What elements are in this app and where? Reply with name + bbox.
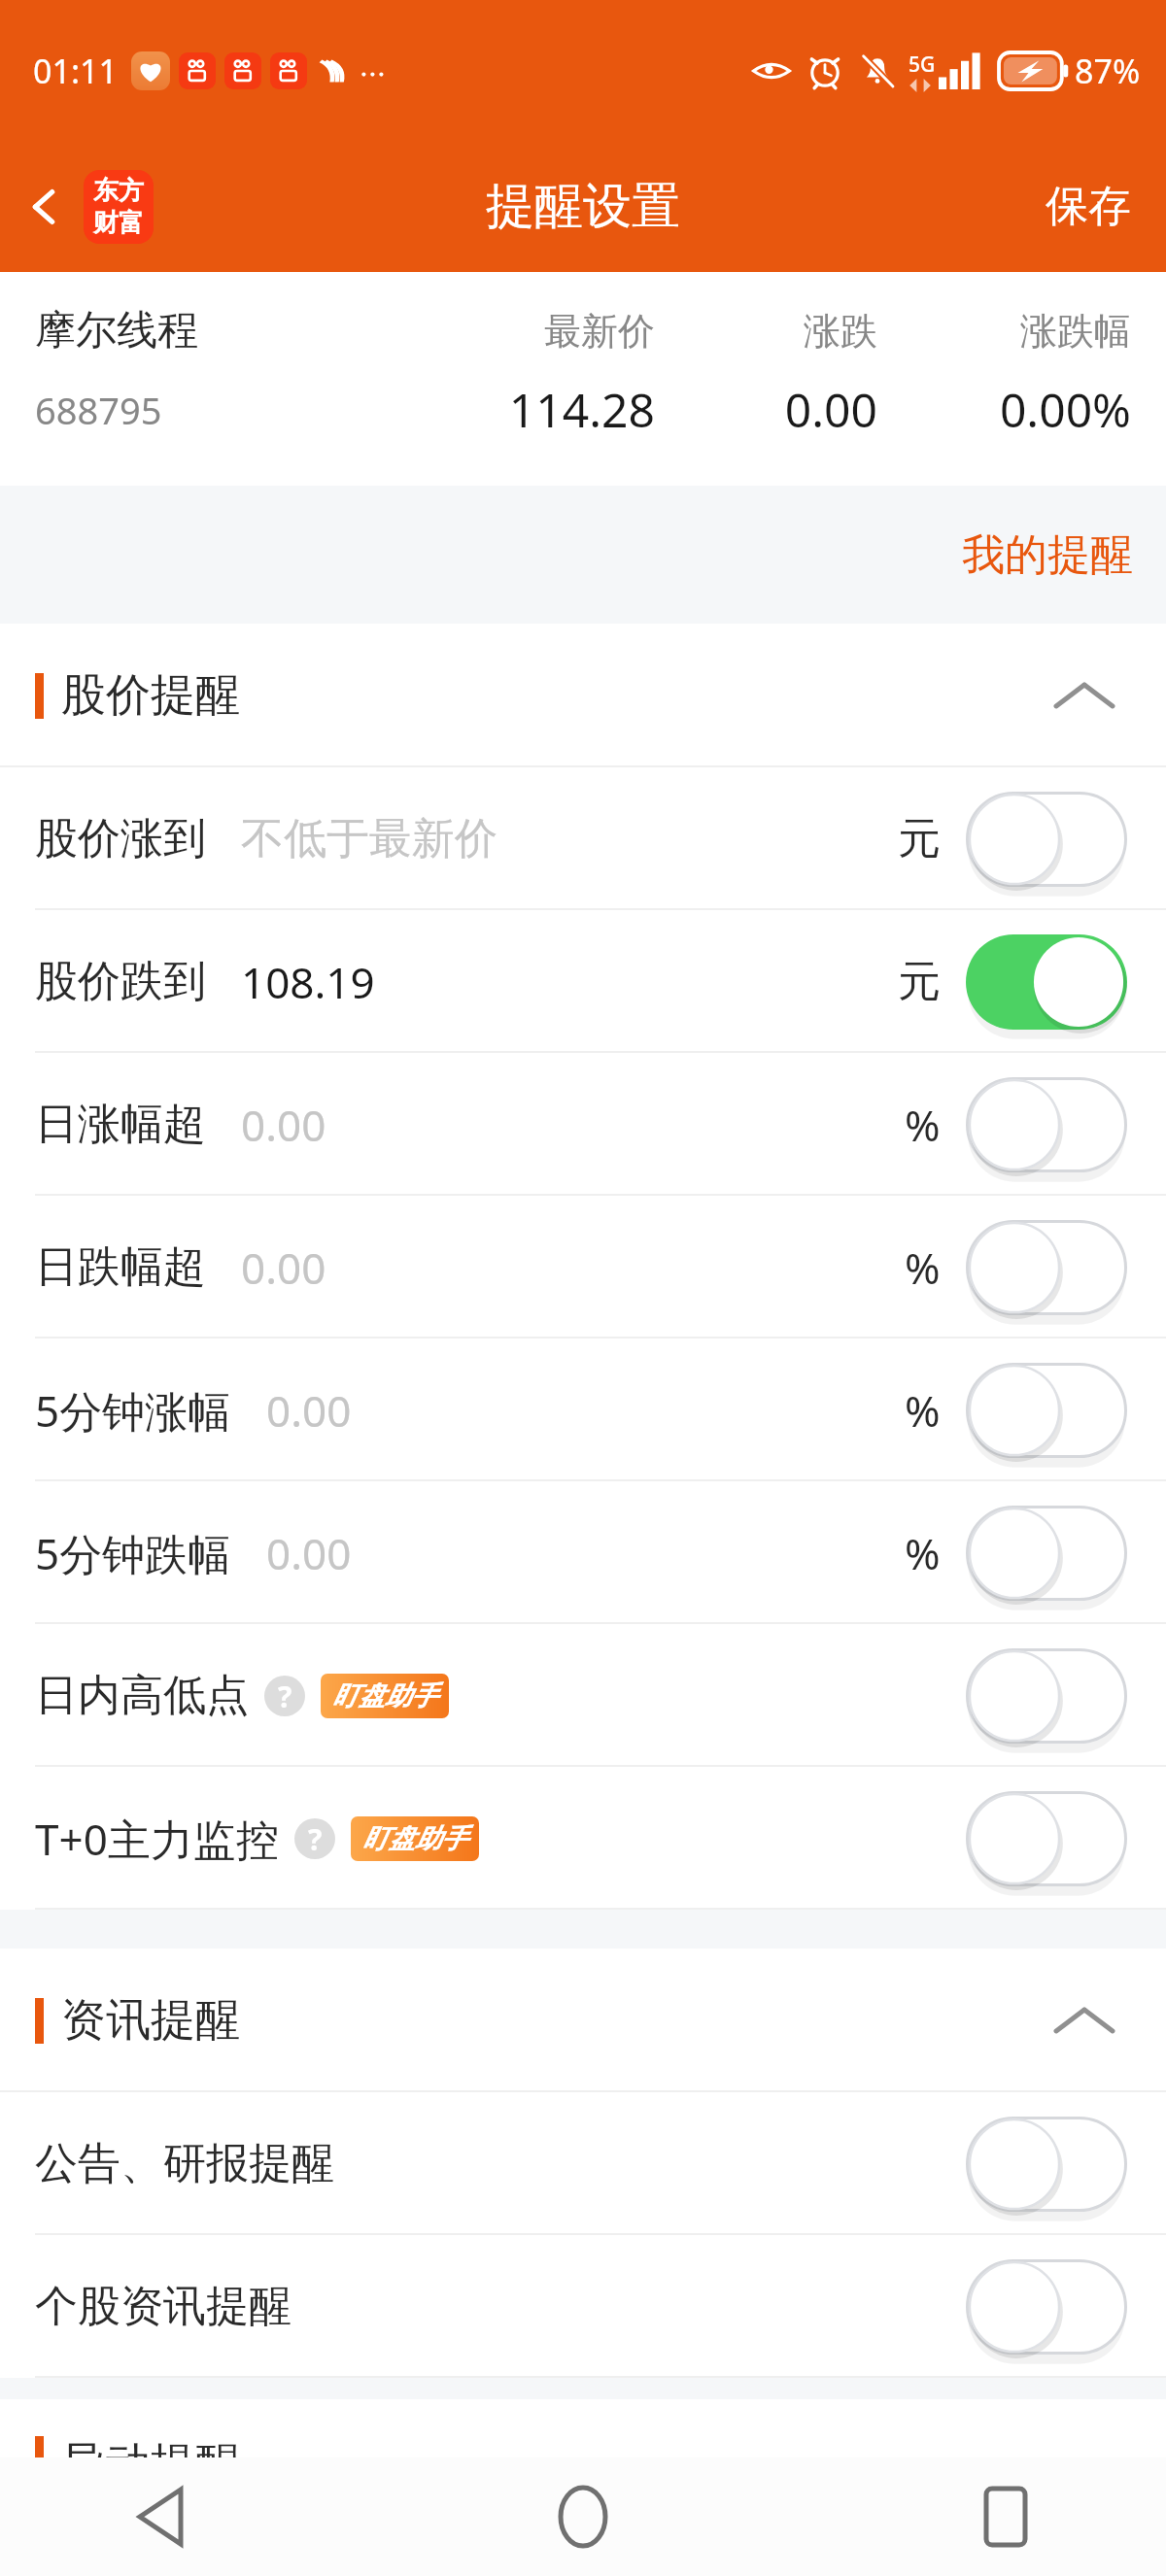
- staticText: %: [905, 1381, 941, 1440]
- staticText: 个股资讯提醒: [35, 2280, 291, 2333]
- staticText: 0.00: [241, 1096, 905, 1154]
- button[interactable]: 股价提醒: [0, 624, 1166, 767]
- button[interactable]: 资讯提醒: [0, 1949, 1166, 2092]
- button[interactable]: 公告、研报提醒: [0, 2092, 1166, 2235]
- staticText: 最新价: [376, 308, 655, 355]
- staticText: 5分钟涨幅: [35, 1381, 231, 1440]
- button[interactable]: 关闭: [966, 1362, 1127, 1459]
- staticText: 摩尔线程: [35, 305, 376, 356]
- button[interactable]: 日内高低点: [0, 1624, 1166, 1767]
- staticText: 涨跌: [655, 308, 877, 355]
- staticText: 5分钟跌幅: [35, 1524, 231, 1582]
- staticText: 元: [898, 812, 941, 865]
- button[interactable]: 关闭: [966, 1505, 1127, 1602]
- staticText: 不低于最新价: [241, 812, 898, 865]
- staticText: 我的提醒: [962, 528, 1133, 582]
- staticText: 0.00: [266, 1381, 905, 1440]
- button[interactable]: 日涨幅超: [0, 1053, 1166, 1196]
- staticText: T+0主力监控: [35, 1810, 279, 1868]
- button[interactable]: 日跌幅超: [0, 1196, 1166, 1339]
- staticText: 股价跌到: [35, 955, 206, 1008]
- staticText: 0.00: [241, 1238, 905, 1297]
- staticText: 提醒设置: [486, 176, 680, 237]
- staticText: 108.19: [241, 953, 898, 1011]
- button[interactable]: 异动提醒: [0, 2399, 1166, 2457]
- staticText: 日涨幅超: [35, 1098, 206, 1151]
- staticText: ?: [308, 1819, 323, 1859]
- button[interactable]: 保存: [1011, 162, 1166, 251]
- staticText: 股价提醒: [61, 667, 240, 724]
- staticText: 87%: [1075, 49, 1141, 93]
- staticText: ?: [278, 1677, 292, 1716]
- button[interactable]: 关闭: [966, 1647, 1127, 1745]
- staticText: 财富: [93, 207, 144, 239]
- staticText: 盯盘助手: [332, 1679, 437, 1712]
- button[interactable]: 返回 东方财富: [0, 160, 167, 254]
- staticText: 保存: [1046, 180, 1131, 233]
- button[interactable]: 关闭: [966, 2258, 1127, 2356]
- staticText: 01:11: [33, 49, 118, 93]
- button[interactable]: 关闭: [966, 1790, 1127, 1887]
- button[interactable]: 关闭: [966, 791, 1127, 888]
- staticText: 元: [898, 955, 941, 1008]
- staticText: 688795: [35, 385, 376, 435]
- button[interactable]: 5分钟涨幅: [0, 1339, 1166, 1481]
- staticText: 公告、研报提醒: [35, 2137, 334, 2190]
- staticText: %: [905, 1238, 941, 1297]
- button[interactable]: 个股资讯提醒: [0, 2235, 1166, 2378]
- button[interactable]: 我的提醒: [929, 513, 1166, 597]
- button[interactable]: 股价跌到: [0, 910, 1166, 1053]
- button[interactable]: 主页: [530, 2463, 636, 2570]
- staticText: 涨跌幅: [877, 308, 1131, 355]
- staticText: 0.00: [266, 1524, 905, 1582]
- staticText: 东方: [93, 175, 144, 207]
- staticText: 0.00: [655, 378, 877, 441]
- staticText: 日内高低点: [35, 1669, 249, 1722]
- staticText: 股价涨到: [35, 812, 206, 865]
- button[interactable]: 关闭: [966, 2116, 1127, 2213]
- staticText: 盯盘助手: [362, 1822, 467, 1855]
- button[interactable]: T+0主力监控: [0, 1767, 1166, 1910]
- staticText: %: [905, 1524, 941, 1582]
- staticText: 异动提醒: [61, 2436, 240, 2457]
- button[interactable]: 返回: [107, 2463, 214, 2570]
- staticText: 5G: [909, 51, 936, 79]
- button[interactable]: 5分钟跌幅: [0, 1481, 1166, 1624]
- button[interactable]: 最近任务: [952, 2463, 1059, 2570]
- button[interactable]: 股价涨到: [0, 767, 1166, 910]
- button[interactable]: 关闭: [966, 1076, 1127, 1173]
- staticText: 日跌幅超: [35, 1240, 206, 1294]
- staticText: 资讯提醒: [61, 1992, 240, 2049]
- staticText: 0.00%: [877, 378, 1131, 441]
- button[interactable]: 关闭: [966, 1219, 1127, 1316]
- staticText: 114.28: [376, 378, 655, 441]
- staticText: %: [905, 1096, 941, 1154]
- button[interactable]: 开启: [966, 933, 1127, 1031]
